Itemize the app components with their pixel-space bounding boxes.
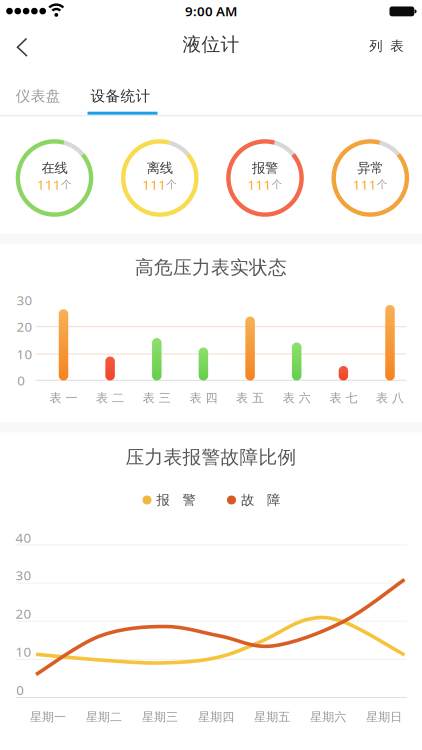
staticText: 仪表盘: [16, 87, 61, 105]
staticText: 111: [247, 176, 271, 193]
staticText: 9:00 AM: [185, 2, 237, 20]
staticText: 表 五: [236, 391, 264, 405]
staticText: 离线: [147, 160, 173, 176]
staticText: 20: [16, 318, 32, 335]
staticText: 10: [15, 643, 31, 660]
button[interactable]: 设备统计: [82, 79, 158, 113]
button[interactable]: 仪表盘: [8, 79, 69, 113]
staticText: 高危压力表实状态: [135, 256, 287, 279]
staticText: 设备统计: [90, 87, 150, 105]
staticText: 报 警: [156, 492, 195, 508]
staticText: 星期四: [198, 710, 234, 724]
staticText: 111: [353, 176, 377, 193]
staticText: 20: [15, 605, 31, 622]
staticText: 星期六: [310, 710, 346, 724]
staticText: 表 七: [329, 391, 357, 405]
staticText: 个: [271, 178, 282, 191]
staticText: 表 八: [376, 391, 404, 405]
staticText: 个: [377, 178, 388, 191]
staticText: 10: [16, 345, 32, 363]
staticText: 30: [16, 291, 32, 309]
staticText: 40: [15, 529, 31, 546]
button[interactable]: 报 警: [142, 486, 195, 514]
staticText: 星期一: [30, 710, 66, 724]
staticText: 在线: [41, 160, 67, 176]
staticText: 异常: [357, 160, 383, 176]
staticText: 压力表报警故障比例: [125, 446, 296, 469]
staticText: 个: [166, 178, 177, 191]
staticText: 列 表: [369, 38, 403, 54]
staticText: 111: [142, 176, 166, 193]
staticText: 星期日: [366, 710, 402, 724]
staticText: 0: [16, 681, 24, 699]
button[interactable]: 返回: [0, 25, 44, 69]
staticText: 液位计: [182, 33, 239, 56]
staticText: 表 四: [189, 391, 217, 405]
staticText: 个: [61, 178, 72, 191]
staticText: 表 二: [96, 391, 124, 405]
staticText: 0: [17, 371, 25, 389]
staticText: 表 六: [283, 391, 311, 405]
staticText: 111: [37, 176, 61, 193]
staticText: 报警: [252, 160, 278, 176]
button[interactable]: 列 表: [363, 28, 409, 64]
button[interactable]: 故 障: [227, 486, 280, 514]
staticText: 星期三: [142, 710, 178, 724]
staticText: 星期二: [86, 710, 122, 724]
staticText: 故 障: [241, 492, 280, 508]
staticText: 表 三: [143, 391, 171, 405]
staticText: 30: [15, 566, 31, 584]
staticText: 表 一: [49, 391, 77, 405]
staticText: 星期五: [254, 710, 290, 724]
